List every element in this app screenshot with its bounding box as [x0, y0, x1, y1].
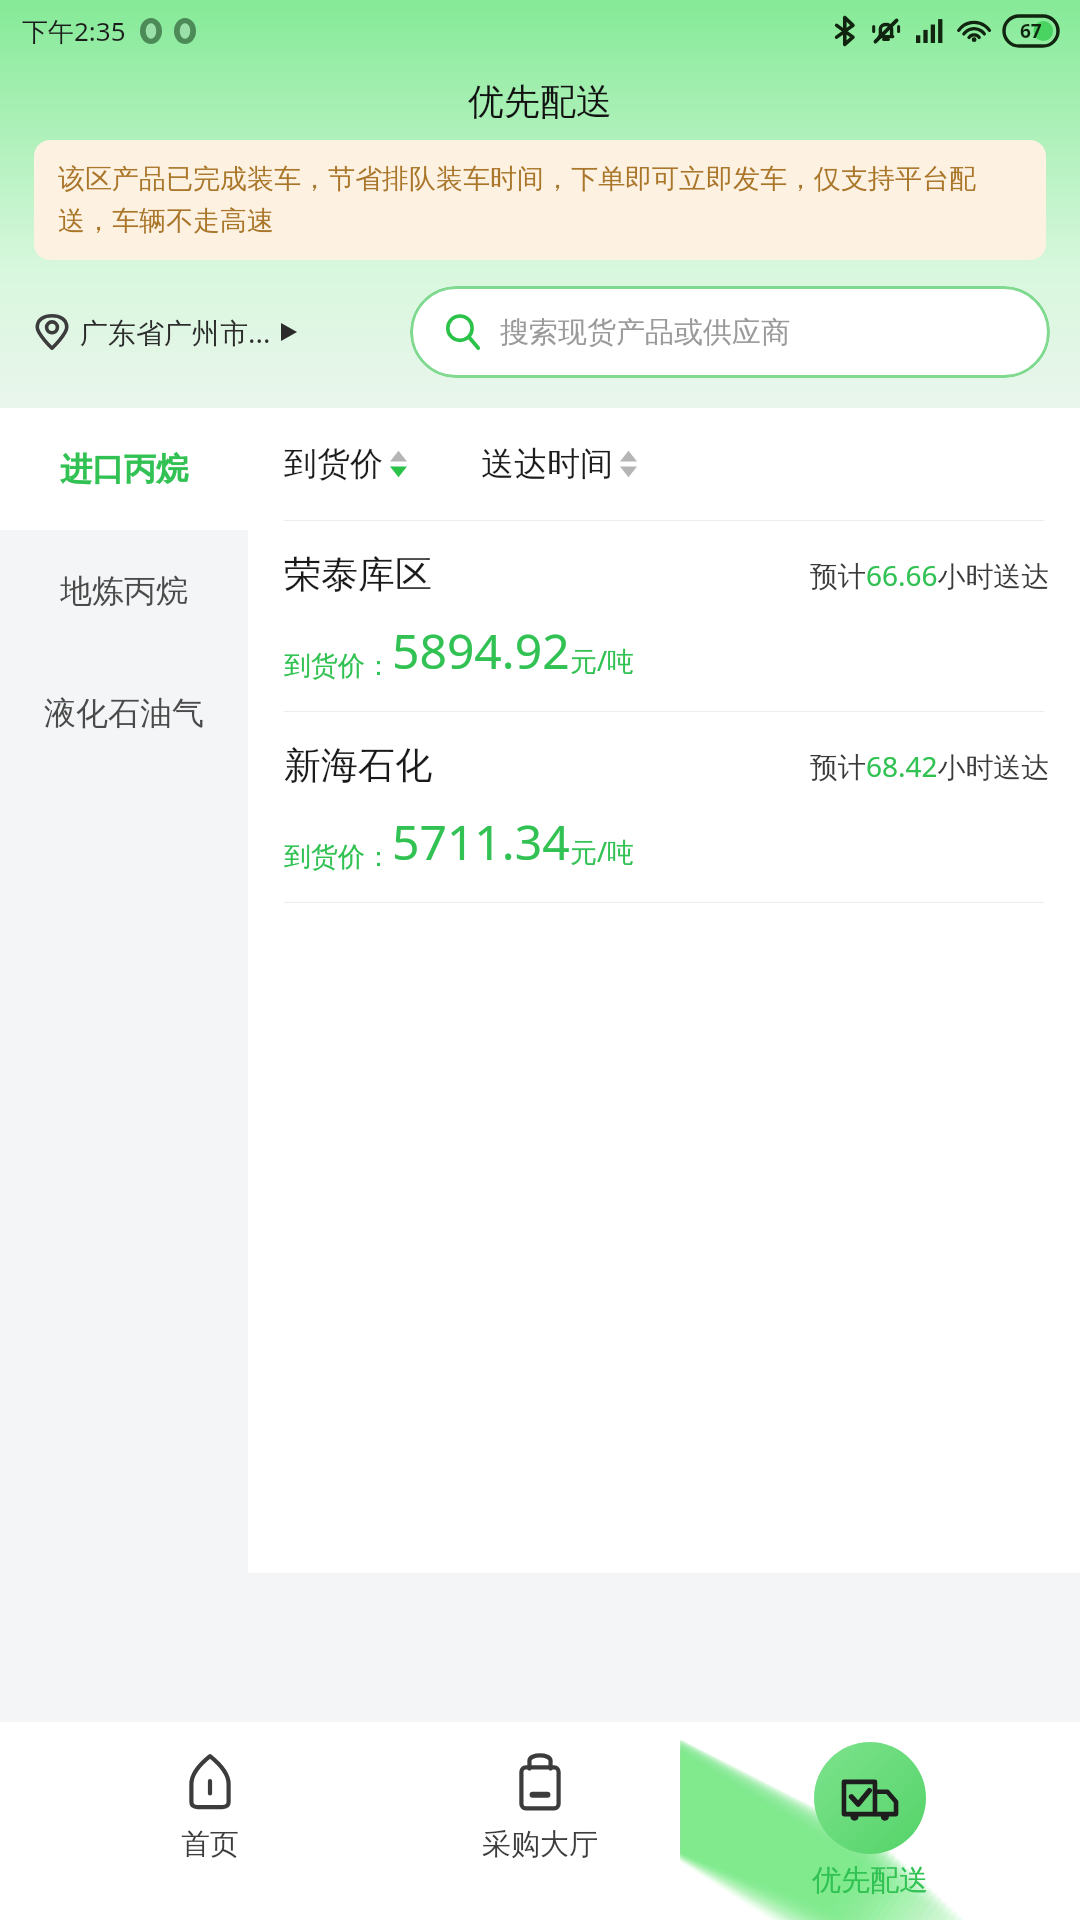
- staticText: 荣泰库区: [284, 551, 432, 598]
- other: 优先配送: [814, 1742, 926, 1854]
- button[interactable]: 广东省广州市...: [34, 305, 297, 359]
- staticText: 下午2:35: [22, 13, 126, 49]
- staticText: 5711.34: [392, 809, 570, 874]
- button[interactable]: 液化石油气: [0, 652, 248, 774]
- staticText: 元/吨: [570, 833, 635, 870]
- staticText: 5894.92: [392, 618, 570, 683]
- staticText: 67: [1020, 18, 1042, 44]
- staticText: 预计66.66小时送达: [810, 556, 1050, 594]
- button[interactable]: 优先配送: [750, 1740, 990, 1901]
- staticText: 预计68.42小时送达: [810, 747, 1050, 785]
- staticText: 进口丙烷: [60, 449, 188, 489]
- staticText: 该区产品已完成装车，节省排队装车时间，下单即可立即发车，仅支持平台配送，车辆不走…: [58, 162, 1022, 238]
- button[interactable]: 新海石化: [248, 712, 1080, 902]
- staticText: 优先配送: [812, 1862, 928, 1899]
- staticText: 优先配送: [468, 79, 612, 124]
- staticText: 到货价：: [284, 840, 392, 874]
- button[interactable]: 地炼丙烷: [0, 530, 248, 652]
- button[interactable]: 首页: [90, 1740, 330, 1873]
- button[interactable]: 送达时间: [481, 433, 637, 495]
- staticText: 首页: [181, 1826, 239, 1863]
- button[interactable]: 进口丙烷: [0, 408, 248, 530]
- staticText: 广东省广州市...: [80, 313, 271, 351]
- button[interactable]: 采购大厅: [420, 1740, 660, 1873]
- staticText: 液化石油气: [44, 693, 204, 733]
- staticText: 到货价: [284, 443, 383, 485]
- staticText: 地炼丙烷: [60, 571, 188, 611]
- staticText: 采购大厅: [482, 1826, 598, 1863]
- button[interactable]: 荣泰库区: [248, 521, 1080, 711]
- staticText: 搜索现货产品或供应商: [500, 314, 790, 351]
- staticText: 送达时间: [481, 443, 613, 485]
- button[interactable]: 搜索现货产品或供应商: [410, 286, 1050, 378]
- staticText: 新海石化: [284, 742, 432, 789]
- button[interactable]: 到货价: [284, 433, 407, 495]
- staticText: 元/吨: [570, 642, 635, 679]
- staticText: 到货价：: [284, 649, 392, 683]
